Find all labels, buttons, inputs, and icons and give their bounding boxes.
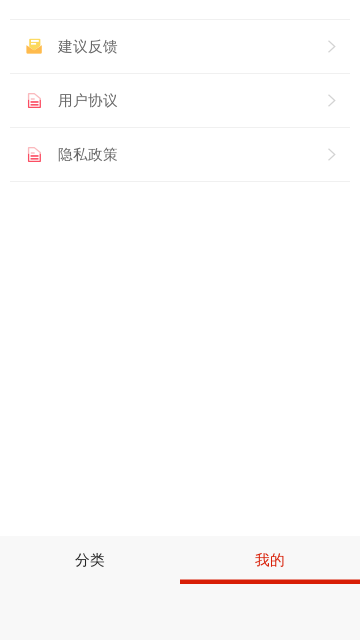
button[interactable]: 我的 (180, 536, 360, 584)
staticText: 用户协议 (58, 91, 118, 109)
staticText: 分类 (75, 551, 105, 569)
staticText: 我的 (255, 551, 285, 569)
button[interactable]: 分类 (0, 536, 180, 584)
button[interactable]: 用户协议 (0, 74, 360, 128)
staticText: 隐私政策 (58, 145, 118, 163)
staticText: 建议反馈 (58, 37, 118, 55)
button[interactable]: 隐私政策 (0, 128, 360, 182)
button[interactable]: 建议反馈 (0, 20, 360, 74)
